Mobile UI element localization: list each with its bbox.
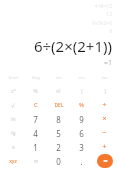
staticText: π [34, 157, 38, 165]
staticText: 4 [33, 128, 38, 139]
staticText: DEL [54, 102, 64, 109]
staticText: 9÷3×2=6 [91, 20, 112, 27]
staticText: = [103, 156, 108, 166]
button[interactable]: lg [2, 126, 24, 140]
button[interactable]: n! [47, 84, 70, 98]
button[interactable]: 0 [47, 154, 70, 168]
button[interactable]: xyz [2, 154, 24, 168]
staticText: % [33, 88, 38, 95]
staticText: 5 [56, 128, 61, 139]
button[interactable]: e [2, 140, 24, 154]
button[interactable]: 9 [70, 112, 93, 126]
button[interactable]: x² [2, 84, 24, 98]
staticText: 8 [56, 114, 61, 125]
button[interactable]: 2 [47, 140, 70, 154]
staticText: tan [101, 75, 108, 80]
staticText: lg [11, 130, 16, 137]
button[interactable]: ÷ [93, 98, 116, 112]
button[interactable]: √ [2, 98, 24, 112]
staticText: × [102, 114, 107, 124]
button[interactable]: 4 [24, 126, 47, 140]
staticText: xyz [9, 158, 17, 165]
staticText: − [102, 128, 107, 138]
staticText: 12 [106, 11, 112, 18]
staticText: ( [81, 88, 83, 95]
button[interactable]: C [24, 98, 47, 112]
button[interactable]: % [70, 98, 93, 112]
staticText: 2 [56, 142, 61, 153]
staticText: 0 [56, 156, 61, 167]
button[interactable]: 3 [70, 140, 93, 154]
staticText: . [80, 156, 83, 167]
button[interactable]: DEL [47, 98, 70, 112]
staticText: 7 [33, 114, 38, 125]
button[interactable]: − [93, 126, 116, 140]
staticText: 6 [79, 128, 84, 139]
staticText: 6 [109, 28, 112, 35]
staticText: cos [78, 75, 85, 80]
staticText: + [102, 142, 107, 152]
staticText: 3 [79, 142, 84, 153]
button[interactable]: 8 [47, 112, 70, 126]
button[interactable]: 6 [70, 126, 93, 140]
staticText: √ [11, 102, 15, 109]
staticText: ) [104, 88, 106, 95]
staticText: ÷ [102, 100, 107, 110]
staticText: 6÷(2×(2+1)) [33, 36, 112, 56]
staticText: n! [56, 88, 61, 95]
staticText: C [34, 101, 38, 109]
staticText: =1 [103, 58, 112, 68]
staticText: ln [11, 116, 16, 123]
button[interactable]: π [24, 154, 47, 168]
button[interactable]: ( [70, 84, 93, 98]
button[interactable]: Grad [2, 70, 24, 84]
button[interactable]: ln [2, 112, 24, 126]
staticText: e [12, 144, 15, 151]
button[interactable]: 5 [47, 126, 70, 140]
button[interactable]: + [93, 140, 116, 154]
button[interactable]: × [93, 112, 116, 126]
staticText: 1 [33, 142, 38, 153]
staticText: x² [11, 88, 16, 95]
staticText: Rng [32, 75, 40, 80]
staticText: 9 [79, 114, 84, 125]
staticText: 4+8=12 [94, 3, 112, 10]
button[interactable]: Rng [24, 70, 47, 84]
button[interactable]: Equals [93, 154, 116, 168]
button[interactable]: 1 [24, 140, 47, 154]
staticText: Grad [8, 75, 18, 80]
staticText: % [79, 101, 84, 109]
button[interactable]: % [24, 84, 47, 98]
button[interactable]: 7 [24, 112, 47, 126]
button[interactable]: . [70, 154, 93, 168]
staticText: sin [56, 75, 62, 80]
